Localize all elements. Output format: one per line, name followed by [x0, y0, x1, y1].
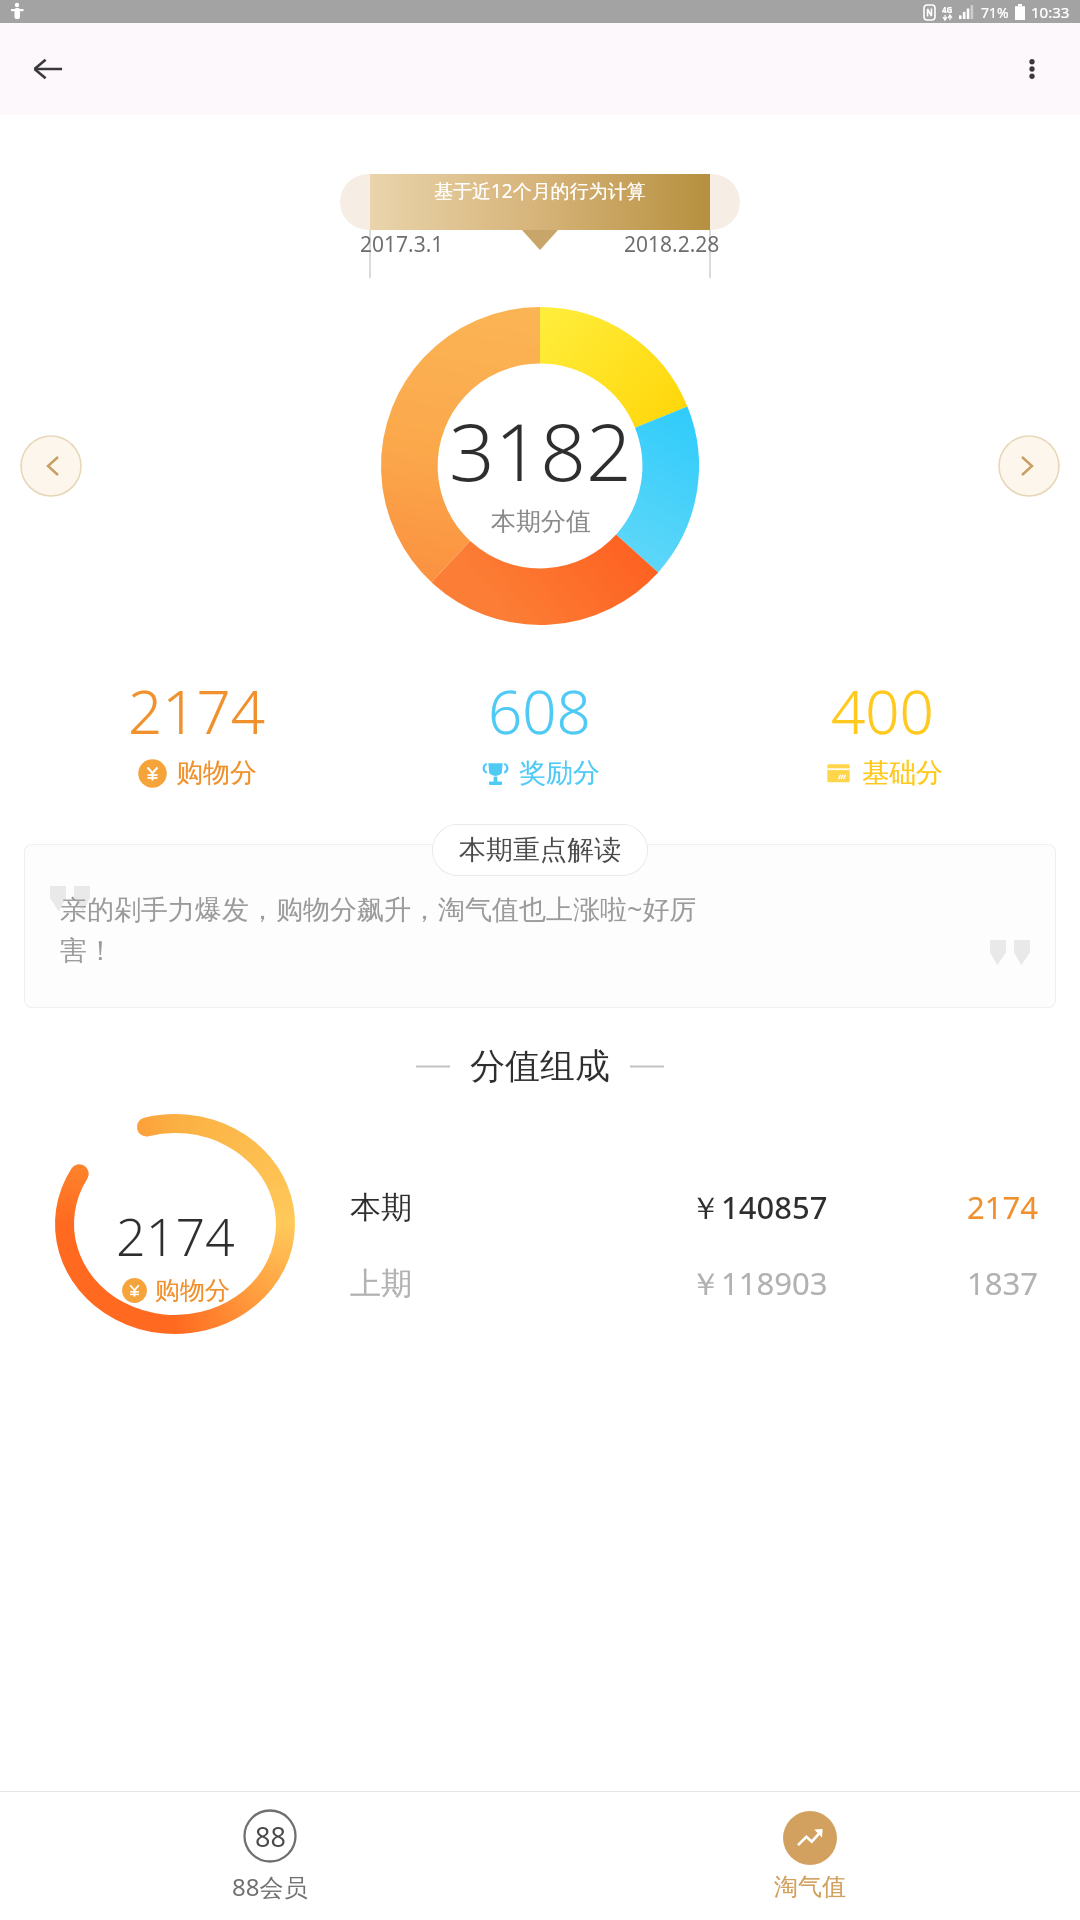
staticText: 2018.2.28	[624, 230, 720, 259]
button[interactable]: 88	[0, 1792, 540, 1920]
staticText: 本期分值	[491, 506, 591, 537]
button[interactable]: More options	[1004, 41, 1060, 97]
staticText: 淘气值	[774, 1872, 846, 1902]
staticText: 4G	[942, 4, 953, 15]
staticText: 基础分	[862, 756, 943, 790]
staticText: 400	[831, 670, 934, 752]
staticText: 2017.3.1	[360, 230, 444, 259]
button[interactable]: 2174	[0, 1114, 1080, 1334]
staticText: 亲的剁手力爆发，购物分飙升，淘气值也上涨啦~好厉 害！	[60, 890, 697, 968]
staticText: 3182	[449, 395, 632, 504]
button[interactable]: Back	[20, 41, 76, 97]
staticText: 基于近12个月的行为计算	[434, 178, 646, 204]
button[interactable]: Previous period	[20, 435, 82, 497]
staticText: ￥118903	[690, 1262, 828, 1304]
staticText: 608	[488, 670, 591, 752]
button[interactable]: 本期重点解读	[432, 824, 648, 876]
staticText: 71%	[981, 3, 1009, 22]
staticText: 2174	[967, 1186, 1038, 1228]
staticText: 上期	[350, 1264, 412, 1303]
staticText: 本期	[350, 1188, 412, 1227]
staticText: 1837	[967, 1262, 1038, 1304]
staticText: 88会员	[232, 1870, 308, 1903]
button[interactable]: 2174	[26, 666, 368, 794]
staticText: 10:33	[1031, 2, 1070, 22]
staticText: 购物分	[176, 756, 257, 790]
staticText: 本期重点解读	[459, 833, 621, 867]
button[interactable]: Next period	[998, 435, 1060, 497]
staticText: 分值组成	[470, 1044, 610, 1088]
staticText: 奖励分	[519, 756, 600, 790]
staticText: ￥140857	[690, 1186, 828, 1228]
staticText: 2174	[116, 1200, 235, 1271]
staticText: 购物分	[155, 1275, 230, 1306]
staticText: 88	[255, 1818, 286, 1855]
staticText: 2174	[128, 670, 266, 752]
button[interactable]: 淘气值	[540, 1792, 1080, 1920]
button[interactable]: 400	[711, 666, 1054, 794]
button[interactable]: 608	[368, 666, 711, 794]
